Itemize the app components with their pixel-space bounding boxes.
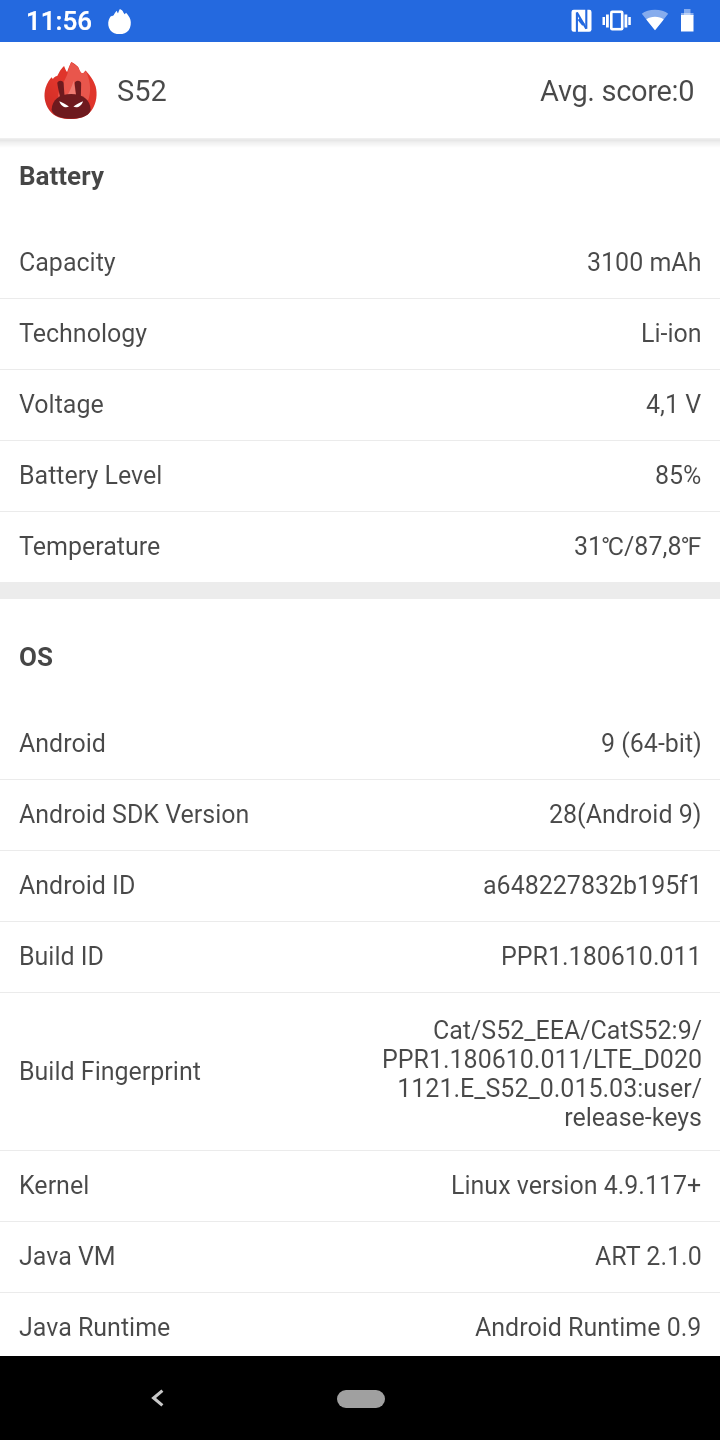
staticText: 1121.E_S52_0.015.03:user/ [397, 1074, 702, 1103]
staticText: Linux version 4.9.117+ [451, 1171, 702, 1200]
button[interactable]: Java VM [0, 1221, 720, 1292]
staticText: Li-ion [641, 319, 702, 348]
staticText: Capacity [19, 248, 116, 277]
staticText: release-keys [564, 1103, 702, 1132]
staticText: Technology [19, 319, 148, 348]
staticText: Voltage [19, 390, 104, 419]
button[interactable]: Battery Level [0, 440, 720, 511]
staticText: Build ID [19, 942, 105, 971]
button[interactable]: Java Runtime [0, 1292, 720, 1363]
staticText: Kernel [19, 1171, 90, 1200]
staticText: 28(Android 9) [549, 800, 702, 829]
button[interactable]: Build ID [0, 921, 720, 992]
staticText: 85% [655, 461, 702, 490]
staticText: PPR1.180610.011 [501, 942, 702, 971]
button[interactable]: Home [337, 1390, 385, 1408]
staticText: Android ID [19, 871, 136, 900]
button[interactable]: Temperature [0, 511, 720, 582]
staticText: Android SDK Version [19, 800, 250, 829]
staticText: 9 (64-bit) [601, 729, 702, 758]
staticText: Avg. score:0 [540, 74, 695, 108]
staticText: Build Fingerprint [19, 1057, 201, 1086]
staticText: Temperature [19, 532, 161, 561]
staticText: OS [19, 642, 53, 672]
button[interactable]: Capacity [0, 227, 720, 298]
button[interactable]: Android SDK Version [0, 779, 720, 850]
button[interactable]: Back [128, 1368, 188, 1428]
staticText: S52 [117, 74, 167, 108]
button[interactable]: Android [0, 708, 720, 779]
staticText: Cat/S52_EEA/CatS52:9/ [432, 1016, 702, 1045]
button[interactable]: Voltage [0, 369, 720, 440]
staticText: Battery Level [19, 461, 163, 490]
staticText: 11:56 [26, 6, 93, 36]
staticText: Android [19, 729, 106, 758]
staticText: Battery [19, 161, 104, 191]
button[interactable]: Android ID [0, 850, 720, 921]
button[interactable]: Build Fingerprint [0, 992, 720, 1150]
staticText: Android Runtime 0.9 [475, 1313, 702, 1342]
staticText: PPR1.180610.011/LTE_D020 [381, 1045, 702, 1074]
staticText: 31℃/87,8℉ [574, 532, 702, 561]
button[interactable]: Technology [0, 298, 720, 369]
staticText: Java Runtime [19, 1313, 171, 1342]
button[interactable]: Kernel [0, 1150, 720, 1221]
staticText: 4,1 V [646, 390, 702, 419]
staticText: a648227832b195f1 [483, 871, 702, 900]
staticText: 3100 mAh [587, 248, 702, 277]
staticText: ART 2.1.0 [595, 1242, 702, 1271]
staticText: Java VM [19, 1242, 116, 1271]
